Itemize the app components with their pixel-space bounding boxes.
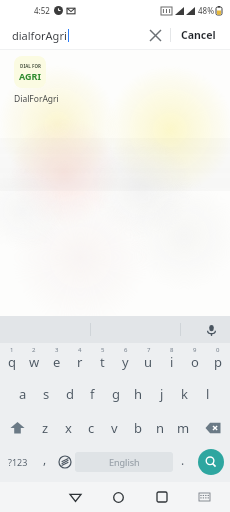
staticText: 3 bbox=[55, 346, 59, 354]
staticText: . bbox=[181, 452, 185, 468]
staticText: r bbox=[77, 353, 83, 371]
staticText: 4:52 bbox=[34, 5, 50, 16]
button[interactable]: m bbox=[172, 411, 195, 445]
staticText: DIAL FOR bbox=[20, 63, 41, 69]
staticText: Cancel bbox=[181, 28, 216, 42]
staticText: , bbox=[43, 451, 47, 467]
staticText: 1 bbox=[10, 346, 14, 354]
staticText: 8 bbox=[170, 346, 174, 354]
button[interactable]: j bbox=[150, 377, 173, 411]
staticText: n bbox=[156, 419, 165, 437]
staticText: 4 bbox=[78, 346, 82, 354]
staticText: t bbox=[100, 353, 105, 371]
button[interactable]: Emoji bbox=[54, 445, 75, 479]
staticText: o bbox=[191, 353, 199, 371]
staticText: g bbox=[112, 385, 120, 403]
button[interactable]: Search bbox=[198, 449, 224, 475]
staticText: u bbox=[144, 353, 153, 371]
button[interactable]: Back bbox=[54, 482, 97, 512]
button[interactable]: 3 bbox=[45, 343, 68, 377]
button[interactable]: c bbox=[80, 411, 103, 445]
button[interactable]: . bbox=[173, 445, 192, 479]
staticText: 6 bbox=[124, 346, 128, 354]
button[interactable]: Recent apps bbox=[140, 482, 183, 512]
button[interactable]: Shift bbox=[0, 411, 34, 445]
staticText: English bbox=[109, 456, 140, 468]
button[interactable]: 4 bbox=[68, 343, 91, 377]
button[interactable]: 0 bbox=[206, 343, 229, 377]
staticText: c bbox=[88, 419, 95, 437]
staticText: k bbox=[181, 385, 188, 403]
staticText: y bbox=[122, 353, 129, 371]
button[interactable]: ?123 bbox=[0, 445, 35, 479]
staticText: dialforAgri bbox=[12, 28, 67, 43]
staticText: v bbox=[111, 419, 118, 437]
button[interactable]: l bbox=[196, 377, 219, 411]
button[interactable]: English bbox=[75, 452, 173, 472]
staticText: w bbox=[29, 353, 40, 371]
button[interactable]: 7 bbox=[137, 343, 160, 377]
staticText: b bbox=[134, 419, 142, 437]
button[interactable]: 5 bbox=[91, 343, 114, 377]
staticText: q bbox=[8, 353, 16, 371]
button[interactable]: Backspace bbox=[195, 411, 230, 445]
button[interactable]: k bbox=[173, 377, 196, 411]
button[interactable]: s bbox=[35, 377, 58, 411]
button[interactable]: Voice input bbox=[200, 319, 222, 341]
button[interactable]: Switch keyboard bbox=[183, 482, 226, 512]
staticText: x bbox=[65, 419, 72, 437]
staticText: h bbox=[134, 385, 143, 403]
staticText: AGRI bbox=[19, 70, 41, 82]
button[interactable]: 6 bbox=[114, 343, 137, 377]
button[interactable]: 8 bbox=[160, 343, 183, 377]
button[interactable]: Cancel bbox=[177, 24, 220, 46]
staticText: 5 bbox=[101, 346, 105, 354]
button[interactable]: 9 bbox=[183, 343, 206, 377]
staticText: j bbox=[160, 385, 164, 403]
staticText: l bbox=[206, 385, 210, 403]
staticText: 48% bbox=[198, 5, 214, 16]
button[interactable]: z bbox=[34, 411, 57, 445]
button[interactable]: a bbox=[11, 377, 35, 411]
staticText: a bbox=[19, 385, 27, 403]
button[interactable]: h bbox=[127, 377, 150, 411]
staticText: f bbox=[90, 385, 95, 403]
button[interactable]: g bbox=[104, 377, 127, 411]
staticText: s bbox=[43, 385, 50, 403]
staticText: 2 bbox=[32, 346, 36, 354]
staticText: 0 bbox=[216, 346, 220, 354]
staticText: ?123 bbox=[8, 456, 28, 468]
button[interactable]: b bbox=[126, 411, 149, 445]
staticText: d bbox=[66, 385, 74, 403]
button[interactable]: x bbox=[57, 411, 80, 445]
button[interactable]: Home bbox=[97, 482, 140, 512]
staticText: DialForAgri bbox=[14, 93, 59, 105]
staticText: m bbox=[177, 419, 190, 437]
staticText: z bbox=[42, 419, 49, 437]
button[interactable]: DIAL FOR bbox=[0, 50, 230, 105]
button[interactable]: , bbox=[35, 445, 54, 479]
button[interactable]: d bbox=[58, 377, 81, 411]
button[interactable]: f bbox=[81, 377, 104, 411]
staticText: 9 bbox=[193, 346, 197, 354]
staticText: 7 bbox=[147, 346, 151, 354]
button[interactable]: Clear search bbox=[142, 22, 168, 48]
staticText: p bbox=[214, 353, 222, 371]
button[interactable]: v bbox=[103, 411, 126, 445]
staticText: e bbox=[53, 353, 61, 371]
button[interactable]: n bbox=[149, 411, 172, 445]
staticText: i bbox=[170, 353, 174, 371]
button[interactable]: 1 bbox=[1, 343, 23, 377]
button[interactable]: 2 bbox=[23, 343, 45, 377]
